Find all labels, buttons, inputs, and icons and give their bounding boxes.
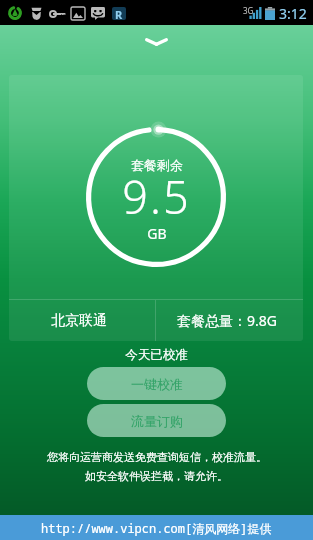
staticText: 今天已校准 — [125, 347, 188, 363]
staticText: 如安全软件误拦截，请允许。 — [85, 469, 228, 483]
staticText: 北京联通 — [51, 312, 107, 330]
button[interactable]: 一键校准 — [87, 367, 226, 400]
staticText: R — [115, 7, 123, 20]
button[interactable]: 流量订购 — [87, 404, 226, 437]
button[interactable]: 北京联通 — [9, 300, 155, 341]
staticText: 一键校准 — [131, 376, 183, 392]
staticText: 流量订购 — [131, 413, 183, 429]
button[interactable]: 套餐总量：9.8G — [156, 300, 303, 341]
staticText: 套餐总量：9.8G — [177, 311, 277, 330]
staticText: 3:12 — [279, 4, 307, 23]
staticText: 3G — [243, 5, 254, 16]
staticText: http://www.vipcn.com[清风网络]提供 — [41, 520, 272, 536]
button[interactable]: Collapse — [142, 29, 171, 54]
staticText: 您将向运营商发送免费查询短信，校准流量。 — [47, 450, 267, 464]
staticText: 9.5 — [122, 166, 191, 227]
staticText: 套餐剩余 — [131, 157, 183, 173]
staticText: GB — [147, 224, 167, 243]
other: Remaining data — [86, 127, 226, 267]
